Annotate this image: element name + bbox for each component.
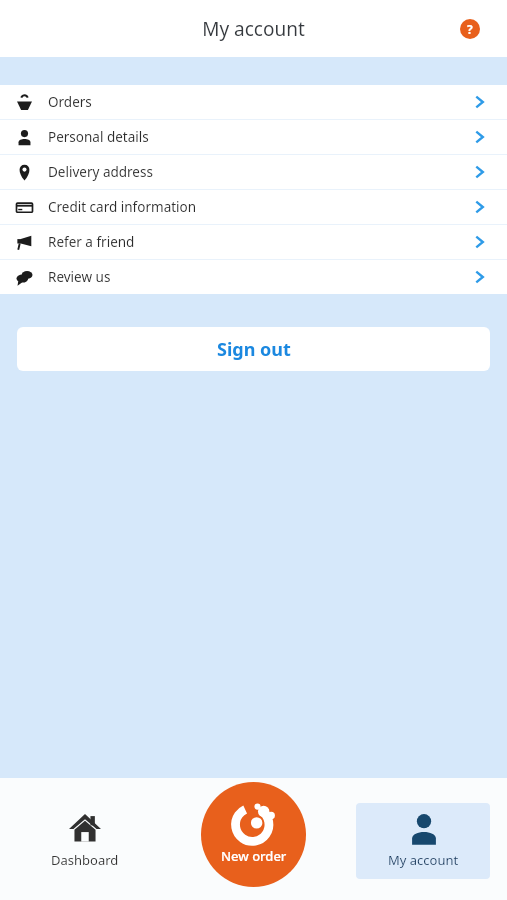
staticText: My account: [202, 16, 305, 42]
button[interactable]: Help: [457, 16, 483, 42]
button[interactable]: Sign out: [17, 327, 490, 371]
staticText: Credit card information: [48, 198, 197, 216]
staticText: Review us: [48, 268, 111, 286]
staticText: My account: [388, 851, 459, 869]
button[interactable]: Credit card information: [0, 190, 507, 224]
staticText: Refer a friend: [48, 233, 135, 251]
staticText: Orders: [48, 93, 92, 111]
button[interactable]: Refer a friend: [0, 225, 507, 259]
staticText: Delivery address: [48, 163, 153, 181]
button[interactable]: Delivery address: [0, 155, 507, 189]
button[interactable]: Review us: [0, 260, 507, 294]
button[interactable]: New order: [201, 782, 306, 887]
staticText: Personal details: [48, 128, 149, 146]
staticText: New order: [221, 847, 287, 865]
staticText: ?: [467, 21, 473, 37]
button[interactable]: Personal details: [0, 120, 507, 154]
staticText: Sign out: [217, 337, 291, 362]
button[interactable]: Orders: [0, 85, 507, 119]
button[interactable]: Dashboard: [0, 778, 169, 900]
button[interactable]: My account: [356, 803, 490, 879]
staticText: Dashboard: [51, 851, 119, 869]
